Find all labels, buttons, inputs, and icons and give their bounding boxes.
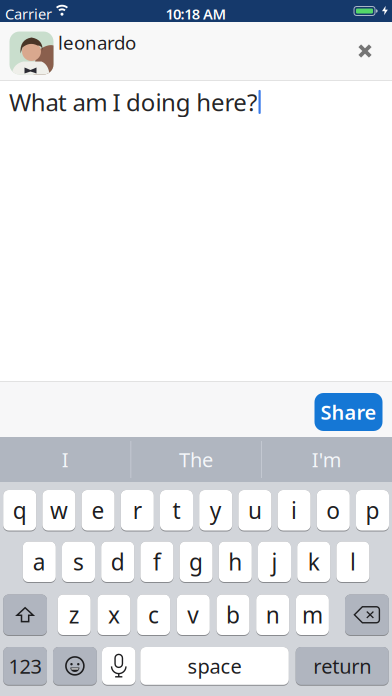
staticText: c — [148, 600, 159, 630]
button[interactable]: l — [336, 541, 369, 583]
button[interactable]: e — [82, 490, 115, 531]
staticText: I'm — [312, 446, 342, 473]
staticText: t — [172, 495, 180, 525]
staticText: Carrier — [5, 4, 52, 23]
staticText: return — [313, 653, 371, 679]
button[interactable]: r — [121, 490, 154, 531]
button[interactable]: p — [356, 490, 389, 531]
button[interactable]: w — [42, 490, 75, 531]
staticText: j — [271, 547, 277, 577]
staticText: u — [248, 495, 262, 525]
button[interactable]: Close — [345, 31, 385, 71]
button[interactable]: k — [297, 541, 330, 583]
staticText: z — [69, 600, 80, 630]
staticText: i — [291, 495, 297, 525]
button[interactable]: q — [3, 490, 36, 531]
button[interactable]: b — [216, 594, 249, 636]
button[interactable]: y — [199, 490, 232, 531]
button[interactable]: z — [58, 594, 91, 636]
staticText: What am I doing here? — [9, 86, 257, 118]
staticText: y — [210, 495, 222, 525]
button[interactable]: i — [278, 490, 311, 531]
button[interactable]: o — [317, 490, 350, 531]
staticText: f — [153, 547, 161, 577]
button[interactable]: Emoji — [53, 647, 97, 686]
staticText: m — [302, 600, 323, 630]
staticText: d — [111, 547, 125, 577]
button[interactable]: u — [238, 490, 271, 531]
button[interactable]: space — [140, 647, 289, 686]
button[interactable]: d — [101, 541, 134, 583]
button[interactable]: Share — [314, 393, 382, 431]
button[interactable]: Dictate — [102, 647, 135, 686]
staticText: x — [108, 600, 120, 630]
button[interactable]: g — [180, 541, 213, 583]
staticText: e — [92, 495, 105, 525]
button[interactable]: f — [140, 541, 173, 583]
staticText: space — [188, 653, 242, 679]
staticText: s — [73, 547, 84, 577]
button[interactable]: Delete — [345, 594, 389, 636]
button[interactable]: h — [219, 541, 252, 583]
button[interactable]: c — [137, 594, 170, 636]
staticText: 10:18 AM — [165, 4, 227, 23]
staticText: The — [179, 446, 213, 473]
staticText: r — [133, 495, 142, 525]
staticText: 123 — [9, 653, 42, 679]
staticText: a — [33, 547, 46, 577]
button[interactable]: I'm — [261, 437, 392, 482]
button[interactable]: m — [296, 594, 329, 636]
button[interactable]: n — [256, 594, 289, 636]
button[interactable]: t — [160, 490, 193, 531]
staticText: n — [266, 600, 280, 630]
staticText: l — [350, 547, 356, 577]
button[interactable]: v — [177, 594, 210, 636]
button[interactable]: s — [62, 541, 95, 583]
staticText: leonardo — [58, 30, 136, 55]
staticText: b — [226, 600, 240, 630]
staticText: v — [187, 600, 199, 630]
staticText: g — [189, 547, 203, 577]
staticText: w — [50, 495, 68, 525]
staticText: p — [365, 495, 379, 525]
button[interactable]: j — [258, 541, 291, 583]
staticText: k — [308, 547, 320, 577]
button[interactable]: x — [97, 594, 130, 636]
button[interactable]: I — [0, 437, 131, 482]
staticText: Share — [320, 399, 376, 425]
button[interactable]: The — [131, 437, 261, 482]
staticText: I — [62, 446, 69, 473]
staticText: o — [326, 495, 340, 525]
staticText: q — [13, 495, 27, 525]
button[interactable]: a — [23, 541, 56, 583]
button[interactable]: 123 — [3, 647, 47, 686]
button[interactable]: Shift — [3, 594, 47, 636]
button[interactable]: return — [296, 647, 389, 686]
staticText: h — [228, 547, 242, 577]
